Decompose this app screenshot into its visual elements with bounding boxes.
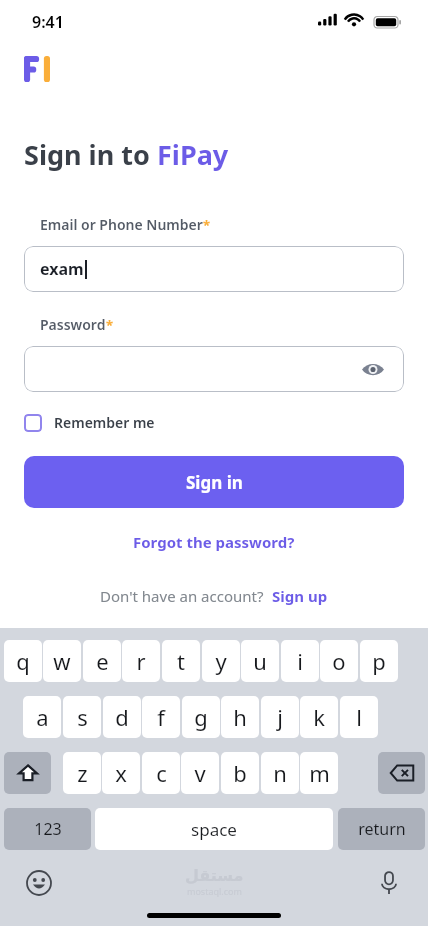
button[interactable]: r [122,640,160,682]
button[interactable]: m [300,752,338,794]
button[interactable]: Remember me [20,408,159,437]
staticText: mostaql.com [187,885,242,897]
button[interactable]: return [338,808,425,850]
staticText: Password [40,315,106,334]
staticText: y [215,646,227,676]
staticText: e [96,646,109,676]
staticText: Remember me [54,413,155,432]
button[interactable]: Sign in [24,456,404,508]
staticText: d [115,702,129,732]
button[interactable]: g [182,696,220,738]
button[interactable]: exam [24,246,404,292]
button[interactable]: j [261,696,299,738]
button[interactable]: u [241,640,279,682]
button[interactable]: Voice input [372,866,406,900]
staticText: c [156,758,167,788]
staticText: r [136,646,146,676]
button[interactable]: Shift [4,752,51,794]
button[interactable]: d [103,696,141,738]
button[interactable]: n [261,752,299,794]
staticText: p [372,646,386,676]
staticText: h [233,702,247,732]
staticText: مستقل [185,866,244,885]
staticText: v [194,758,206,788]
button[interactable]: h [221,696,259,738]
button[interactable]: b [221,752,259,794]
staticText: n [273,758,287,788]
staticText: j [277,702,283,732]
staticText: g [194,702,208,732]
staticText: Email or Phone Number [40,215,203,234]
staticText: f [157,702,165,732]
staticText: Sign in [186,471,243,494]
button[interactable]: e [83,640,121,682]
button[interactable]: Show password [360,356,386,382]
staticText: w [53,646,71,676]
staticText: m [309,758,330,788]
staticText: 9:41 [32,11,64,33]
staticText: space [191,818,237,841]
button[interactable]: s [63,696,101,738]
button[interactable]: z [63,752,101,794]
button[interactable]: Forgot the password? [0,528,428,556]
button[interactable]: l [340,696,378,738]
staticText: Don't have an account? [100,586,264,606]
staticText: s [77,702,88,732]
button[interactable]: 123 [4,808,91,850]
staticText: k [313,702,325,732]
staticText: Sign up [272,586,328,606]
button[interactable]: space [95,808,333,850]
button[interactable]: k [300,696,338,738]
staticText: i [297,646,303,676]
staticText: x [115,758,127,788]
staticText: return [358,818,406,840]
staticText: 123 [34,818,62,840]
button[interactable]: w [43,640,81,682]
button[interactable]: y [202,640,240,682]
button[interactable]: Sign up [272,586,328,606]
button[interactable]: a [23,696,61,738]
staticText: * [106,316,114,334]
button[interactable]: q [4,640,42,682]
staticText: z [77,758,88,788]
staticText: exam [40,258,84,280]
button[interactable]: Emoji [22,866,56,900]
staticText: o [332,646,346,676]
button[interactable]: f [142,696,180,738]
button[interactable]: c [142,752,180,794]
staticText: l [356,702,362,732]
button[interactable]: x [102,752,140,794]
staticText: t [177,646,185,676]
staticText: Sign in to [24,136,157,173]
staticText: u [253,646,267,676]
button[interactable]: v [181,752,219,794]
button[interactable]: o [320,640,358,682]
staticText: * [203,216,211,234]
staticText: FiPay [157,136,229,173]
button[interactable]: p [360,640,398,682]
staticText: Forgot the password? [133,532,295,552]
staticText: a [36,702,49,732]
button[interactable]: i [281,640,319,682]
staticText: b [233,758,247,788]
button[interactable]: t [162,640,200,682]
button[interactable]: Backspace [378,752,425,794]
button[interactable]: Show password [24,346,404,392]
staticText: q [16,646,30,676]
